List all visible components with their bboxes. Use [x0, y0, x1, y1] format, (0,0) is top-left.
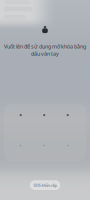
staticText: Vuốt lên để sử dụng mở khóa bằng: [4, 43, 86, 50]
staticText: SOS khẩn cấp: [33, 182, 56, 188]
button[interactable]: SOS khẩn cấp: [30, 180, 60, 190]
staticText: dấu vân tay: [31, 50, 59, 57]
